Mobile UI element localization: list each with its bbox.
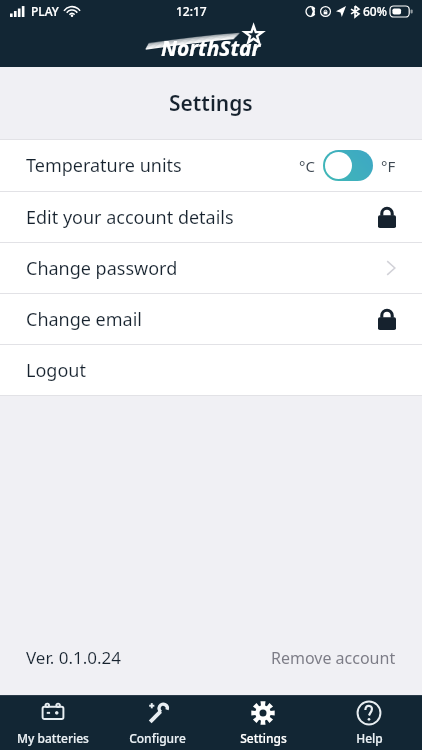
other: Open [386, 259, 396, 277]
button[interactable]: Temperature units [0, 140, 422, 191]
staticText: Change password [26, 256, 178, 281]
staticText: °F [381, 156, 396, 176]
button[interactable]: Change password [0, 243, 422, 293]
other: Locked [378, 308, 396, 330]
staticText: Change email [26, 307, 142, 332]
staticText: Edit your account details [26, 205, 234, 230]
button[interactable]: Change email [0, 294, 422, 344]
button[interactable]: Edit your account details [0, 192, 422, 242]
button[interactable]: Help [316, 696, 422, 750]
staticText: Remove account [271, 647, 396, 669]
button[interactable]: Settings [210, 696, 316, 750]
button[interactable]: Temperature unit toggle [323, 150, 373, 181]
staticText: °C [299, 156, 315, 176]
button[interactable]: My batteries [0, 696, 105, 750]
staticText: PLAY [31, 3, 59, 19]
button[interactable]: Logout [0, 345, 422, 395]
staticText: My batteries [17, 730, 89, 746]
staticText: NorthStar [161, 34, 261, 63]
staticText: Settings [169, 89, 253, 118]
staticText: Help [356, 730, 383, 746]
staticText: 60% [363, 3, 387, 19]
button[interactable]: Remove account [271, 647, 396, 669]
staticText: Configure [129, 730, 186, 746]
staticText: Settings [240, 730, 287, 746]
staticText: Temperature units [26, 153, 182, 178]
button[interactable]: Configure [105, 696, 210, 750]
staticText: Logout [26, 358, 86, 383]
other: Locked [378, 206, 396, 228]
staticText: 12:17 [176, 3, 207, 19]
staticText: Ver. 0.1.0.24 [26, 646, 122, 669]
